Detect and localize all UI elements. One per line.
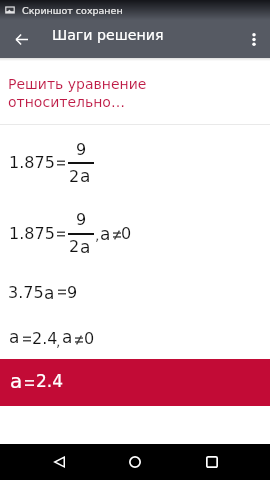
staticText: 1.875 [9, 153, 55, 172]
staticText: 2 [69, 237, 80, 256]
staticText: 3.75 [8, 283, 44, 302]
staticText: 9 [67, 283, 78, 302]
button[interactable]: More options [238, 20, 270, 58]
button[interactable]: Recents [194, 444, 230, 480]
staticText: 2.4 [36, 371, 64, 391]
staticText: 0 [121, 224, 132, 243]
staticText: 0 [84, 329, 95, 348]
staticText: 9 [76, 210, 87, 229]
staticText: Шаги решения [52, 27, 164, 44]
button[interactable]: a [0, 359, 270, 406]
staticText: Скриншот сохранен [22, 5, 123, 16]
staticText: a [80, 166, 91, 186]
button[interactable]: Home [117, 444, 153, 480]
staticText: 2 [69, 167, 80, 186]
staticText: a [100, 224, 111, 244]
staticText: 9 [76, 140, 87, 159]
button[interactable]: Back [9, 20, 33, 58]
staticText: , [95, 227, 100, 243]
staticText: 1.875 [9, 224, 55, 243]
staticText: a [9, 327, 20, 347]
staticText: Решить уравнение относительно… [8, 74, 147, 110]
staticText: , [56, 333, 61, 349]
staticText: a [80, 237, 91, 257]
staticText: a [44, 283, 55, 303]
staticText: 2.4 [32, 329, 58, 348]
staticText: a [10, 369, 23, 392]
button[interactable]: Back [41, 444, 77, 480]
staticText: a [62, 327, 73, 347]
